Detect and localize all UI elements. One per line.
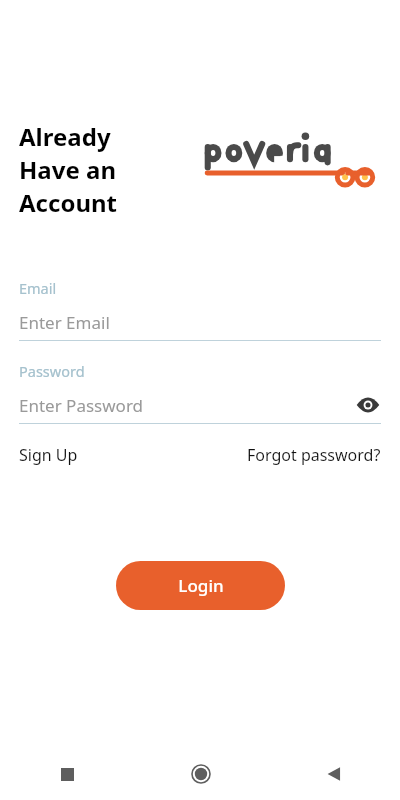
staticText: Have an: [19, 153, 116, 186]
button[interactable]: Back: [267, 748, 400, 800]
staticText: Account: [19, 186, 117, 219]
staticText: Enter Email: [19, 311, 110, 334]
button[interactable]: Sign Up: [19, 444, 78, 466]
button[interactable]: Login: [116, 561, 285, 610]
button[interactable]: Show password: [355, 393, 381, 417]
staticText: Enter Password: [19, 394, 144, 417]
staticText: Already: [19, 120, 111, 153]
button[interactable]: Enter Email: [19, 310, 381, 334]
staticText: Password: [19, 361, 85, 381]
staticText: Sign Up: [19, 444, 78, 466]
staticText: Forgot password?: [247, 444, 381, 466]
button[interactable]: Recent apps: [0, 748, 134, 800]
staticText: Email: [19, 278, 57, 298]
staticText: Login: [178, 574, 224, 597]
button[interactable]: Enter Password: [19, 393, 355, 417]
button[interactable]: Forgot password?: [247, 444, 381, 466]
button[interactable]: Home: [134, 748, 267, 800]
